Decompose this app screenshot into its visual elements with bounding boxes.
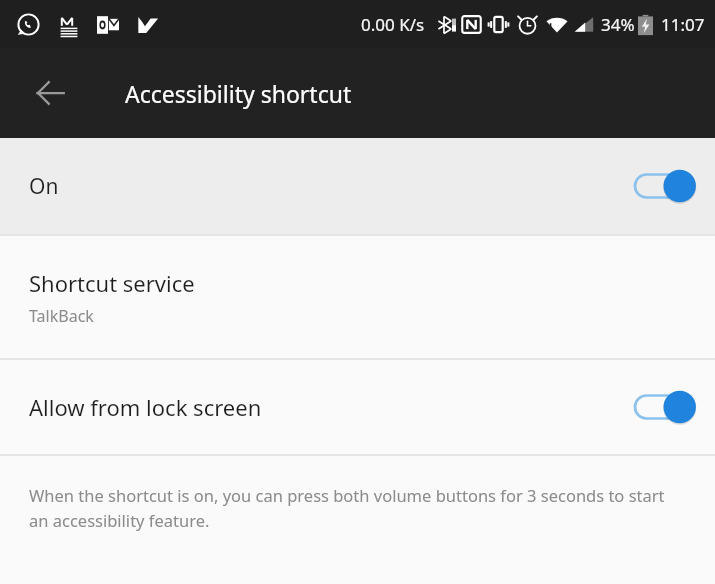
button[interactable]: Navigate up — [22, 65, 78, 121]
button[interactable]: On — [0, 138, 715, 234]
staticText: On — [29, 172, 635, 201]
button[interactable]: Allow from lock screen — [0, 360, 715, 454]
staticText: 0.00 K/s — [361, 13, 425, 36]
staticText: TalkBack — [29, 305, 94, 327]
staticText: Shortcut service — [29, 268, 195, 298]
button[interactable]: Shortcut service — [0, 236, 715, 358]
button[interactable]: Toggle on — [635, 168, 687, 204]
staticText: Accessibility shortcut — [125, 78, 352, 109]
button[interactable]: Toggle on — [635, 389, 687, 425]
staticText: 34% — [601, 13, 635, 36]
staticText: Allow from lock screen — [29, 392, 635, 422]
staticText: When the shortcut is on, you can press b… — [29, 484, 683, 532]
staticText: 11:07 — [661, 13, 705, 36]
